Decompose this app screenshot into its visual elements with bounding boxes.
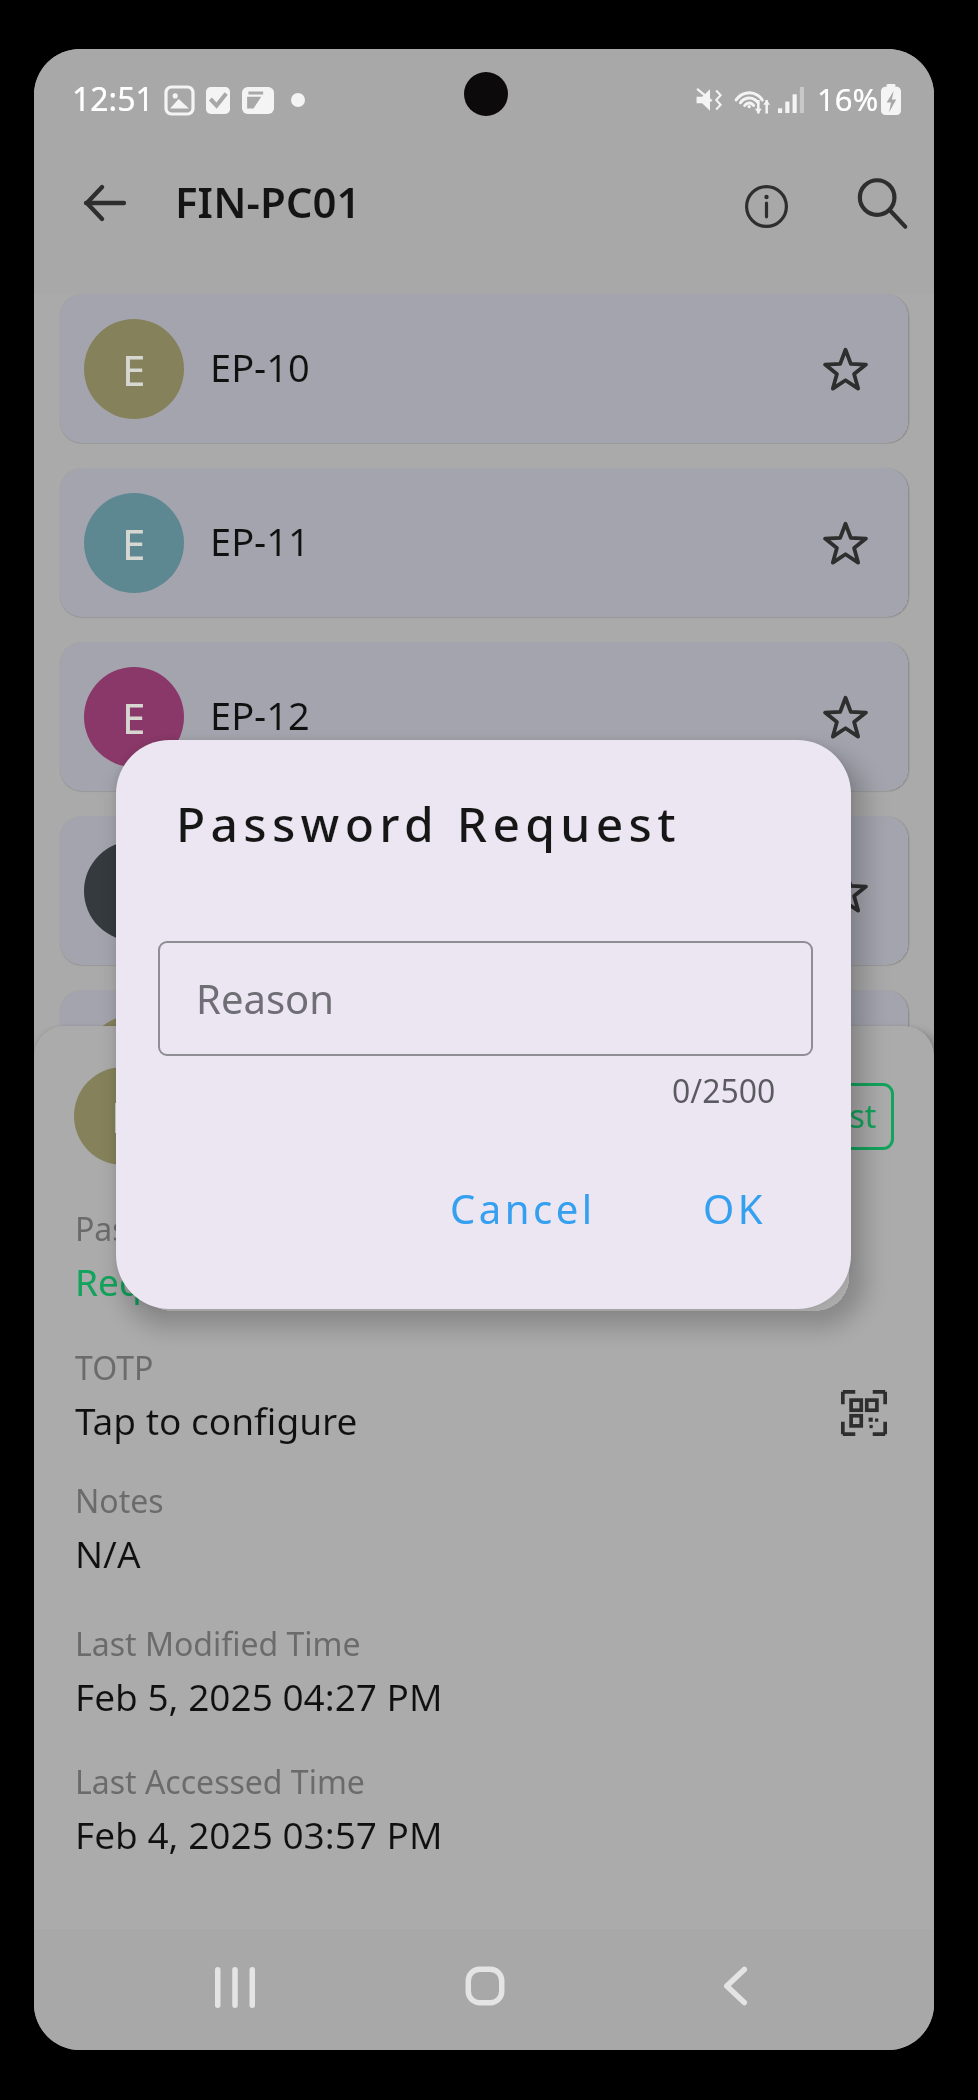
button[interactable]: E: [60, 816, 908, 965]
staticText: OK: [703, 1181, 766, 1235]
button[interactable]: Home: [435, 1936, 535, 2036]
staticText: Password Request: [176, 791, 681, 856]
button[interactable]: Favorite: [808, 854, 882, 928]
staticText: Request: [754, 1094, 877, 1138]
staticText: 0/2500: [672, 1069, 776, 1113]
staticText: Feb 4, 2025 03:57 PM: [75, 1809, 443, 1859]
staticText: Feb 5, 2025 04:27 PM: [75, 1671, 443, 1721]
staticText: E: [122, 515, 146, 572]
button[interactable]: E: [60, 642, 908, 791]
staticText: EP-10: [210, 341, 310, 393]
staticText: 12:51: [72, 77, 154, 121]
staticText: FIN-PC01: [175, 173, 361, 230]
staticText: Tap to configure: [75, 1395, 358, 1445]
button[interactable]: Scan QR code: [830, 1379, 898, 1447]
staticText: Last Modified Time: [75, 1622, 361, 1666]
staticText: EP-12: [210, 689, 310, 741]
button[interactable]: Back: [686, 1936, 786, 2036]
staticText: E: [122, 689, 146, 746]
button[interactable]: Favorite: [808, 680, 882, 754]
button[interactable]: E: [60, 468, 908, 617]
button[interactable]: Cancel: [434, 1167, 612, 1249]
staticText: Password: [75, 1207, 220, 1251]
staticText: Last Accessed Time: [75, 1760, 365, 1804]
staticText: N/A: [75, 1528, 141, 1578]
staticText: E: [111, 1088, 135, 1145]
button[interactable]: Favorite: [808, 1028, 882, 1102]
staticText: 16%: [817, 78, 879, 120]
button[interactable]: Info: [726, 166, 806, 246]
staticText: Cancel: [450, 1181, 596, 1235]
staticText: EP-14: [210, 1037, 310, 1089]
button[interactable]: OK: [687, 1167, 782, 1249]
staticText: E: [122, 341, 146, 398]
button[interactable]: E: [60, 294, 908, 443]
button[interactable]: Search: [842, 164, 922, 244]
staticText: TOTP: [75, 1346, 154, 1390]
staticText: EP-11: [210, 515, 310, 567]
staticText: Notes: [75, 1479, 164, 1523]
button[interactable]: Navigate back: [66, 164, 144, 242]
button[interactable]: E: [60, 990, 908, 1139]
staticText: Reason: [196, 971, 334, 1025]
button[interactable]: Recent apps: [185, 1937, 285, 2037]
button[interactable]: Favorite: [808, 506, 882, 580]
button[interactable]: Favorite: [808, 332, 882, 406]
button[interactable]: Request: [736, 1083, 894, 1150]
button[interactable]: Reason: [158, 941, 813, 1056]
staticText: Request: [75, 1256, 217, 1306]
